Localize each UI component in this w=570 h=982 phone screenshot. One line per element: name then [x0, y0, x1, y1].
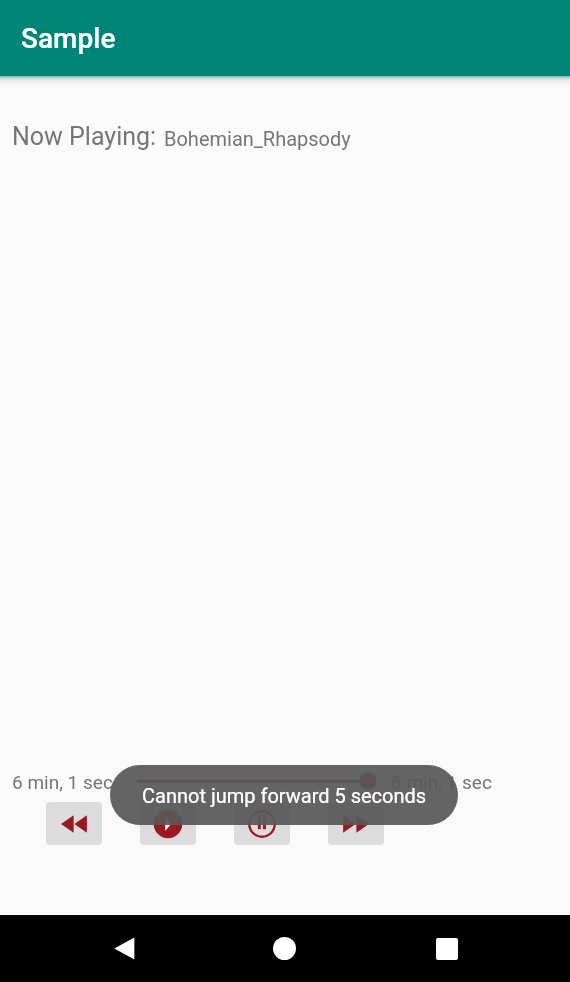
staticText: Sample [21, 22, 116, 55]
staticText: Bohemian_Rhapsody [164, 127, 351, 150]
button[interactable]: Back [93, 915, 154, 982]
button[interactable]: Rewind [46, 802, 102, 845]
button[interactable]: Recents [416, 915, 477, 982]
button[interactable]: Pause [234, 802, 290, 845]
staticText: Now Playing: [12, 122, 157, 151]
button[interactable]: Fast forward [328, 802, 384, 845]
button[interactable]: Play [140, 802, 196, 845]
staticText: 6 min, 1 sec [12, 771, 113, 793]
staticText: Cannot jump forward 5 seconds [142, 784, 427, 807]
button[interactable]: Home [254, 915, 315, 982]
staticText: 6 min, 1 sec [391, 771, 492, 793]
